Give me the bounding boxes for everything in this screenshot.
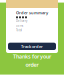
staticText: order [25, 61, 38, 68]
staticText: Track order [21, 44, 43, 49]
button[interactable]: Track order [8, 43, 56, 50]
staticText: Thanks for your [13, 53, 51, 60]
staticText: Items [16, 24, 23, 27]
staticText: Order summary [16, 10, 48, 15]
staticText: Total [16, 28, 22, 32]
staticText: Delivery [16, 19, 27, 23]
